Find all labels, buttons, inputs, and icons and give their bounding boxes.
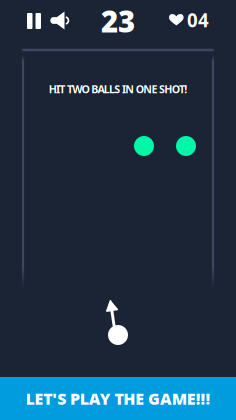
staticText: 04 — [187, 8, 209, 32]
button[interactable]: Pause — [23, 9, 45, 33]
staticText: LET'S PLAY THE GAME!!! — [25, 388, 210, 409]
staticText: 23 — [101, 1, 135, 40]
staticText: HIT TWO BALLS IN ONE SHOT! — [49, 82, 187, 96]
button[interactable]: LET'S PLAY THE GAME!!! — [0, 377, 236, 420]
button[interactable]: Sound — [48, 9, 72, 33]
